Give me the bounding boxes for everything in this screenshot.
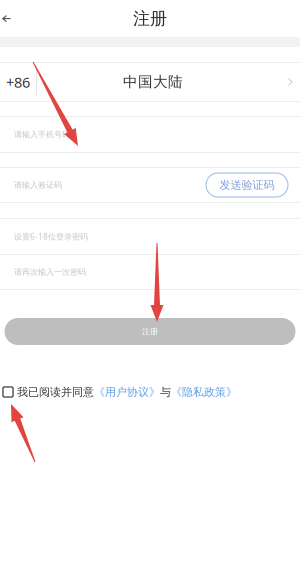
staticText: 中国大陆 — [123, 73, 183, 91]
staticText: 《隐私政策》 — [171, 385, 237, 399]
staticText: 发送验证码 — [219, 178, 274, 192]
button[interactable]: Agree to terms — [3, 387, 13, 397]
staticText: 请再次输入一次密码 — [14, 267, 86, 277]
staticText: 请输入验证码 — [14, 180, 62, 190]
staticText: 《用户协议》 — [94, 385, 160, 399]
staticText: 我已阅读并同意 — [17, 385, 94, 399]
staticText: 注册 — [142, 326, 158, 337]
button[interactable]: 《用户协议》 — [94, 385, 160, 399]
staticText: 与 — [160, 385, 171, 399]
staticText: +86 — [6, 72, 30, 92]
button[interactable]: +86 — [0, 63, 300, 101]
staticText: 设置6-18位登录密码 — [14, 231, 88, 242]
button[interactable]: 注册 — [4, 318, 295, 345]
button[interactable]: 《隐私政策》 — [171, 385, 237, 399]
button[interactable]: 发送验证码 — [206, 173, 288, 197]
button[interactable]: Back — [0, 0, 13, 37]
staticText: 注册 — [133, 8, 167, 29]
staticText: 请输入手机号码 — [14, 129, 70, 140]
